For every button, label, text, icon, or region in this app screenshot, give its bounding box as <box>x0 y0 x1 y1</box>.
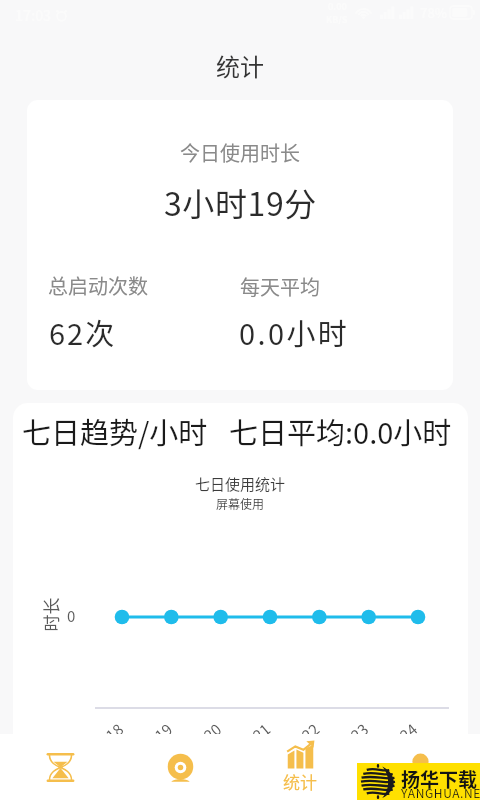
button[interactable]: 统计 <box>240 740 360 794</box>
staticText: 总启动次数 <box>48 271 148 300</box>
staticText: 0 <box>67 605 76 627</box>
staticText: 七日使用统计 <box>195 473 286 495</box>
staticText: 屏幕使用 <box>216 495 265 512</box>
staticText: 时长 <box>37 597 62 631</box>
staticText: 0.0小时 <box>239 311 350 353</box>
staticText: 3小时19分 <box>164 179 317 225</box>
staticText: 19 <box>150 718 177 734</box>
staticText: 今日使用时长 <box>180 138 300 167</box>
staticText: YANGHUA.NET <box>401 784 480 800</box>
staticText: 23 <box>346 718 373 734</box>
staticText: 24 <box>395 718 422 734</box>
staticText: 扬华下载 <box>401 765 478 793</box>
button[interactable]: 我的 <box>360 753 480 782</box>
button[interactable]: 计时 <box>0 753 120 782</box>
staticText: 统计 <box>283 769 317 794</box>
staticText: 统计 <box>216 48 264 83</box>
staticText: 21 <box>248 718 275 734</box>
staticText: 每天平均 <box>240 272 320 301</box>
button[interactable]: 监测 <box>120 753 240 782</box>
staticText: 七日趋势/小时 <box>22 410 208 452</box>
staticText: 七日平均:0.0小时 <box>229 410 452 452</box>
staticText: 62次 <box>49 311 117 353</box>
staticText: 20 <box>199 718 226 734</box>
staticText: 22 <box>297 718 324 734</box>
staticText: 18 <box>101 718 128 734</box>
